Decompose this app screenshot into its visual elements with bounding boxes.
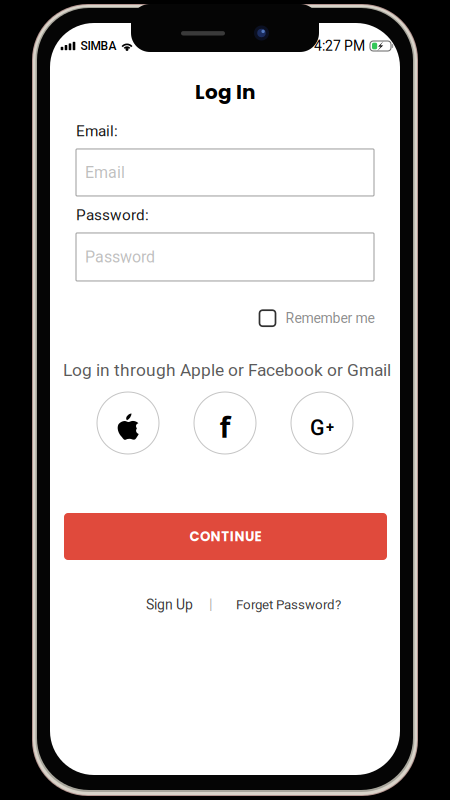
- staticText: Password: [85, 248, 155, 266]
- staticText: Password:: [76, 206, 149, 224]
- staticText: Email: [85, 163, 125, 182]
- staticText: 4:27 PM: [314, 38, 365, 54]
- staticText: |: [209, 596, 213, 613]
- staticText: +: [326, 418, 334, 436]
- staticText: Remember me: [285, 310, 374, 326]
- button[interactable]: Forget Password?: [236, 597, 341, 612]
- button[interactable]: CONTINUE: [64, 513, 387, 560]
- button[interactable]: Sign in with Facebook: [194, 392, 256, 454]
- staticText: Log in through Apple or Facebook or Gmai…: [63, 360, 391, 380]
- button[interactable]: Sign Up: [146, 596, 193, 613]
- button[interactable]: Remember me: [259, 310, 374, 326]
- button[interactable]: Sign in with Google: [291, 392, 353, 454]
- staticText: Email:: [76, 122, 118, 140]
- staticText: G: [310, 415, 325, 440]
- staticText: f: [219, 408, 230, 446]
- staticText: Log In: [195, 78, 255, 106]
- staticText: Forget Password?: [236, 597, 341, 612]
- button[interactable]: Sign in with Apple: [97, 392, 159, 454]
- staticText: CONTINUE: [189, 527, 262, 546]
- staticText: SIMBA: [80, 39, 116, 53]
- staticText: Sign Up: [146, 596, 193, 613]
